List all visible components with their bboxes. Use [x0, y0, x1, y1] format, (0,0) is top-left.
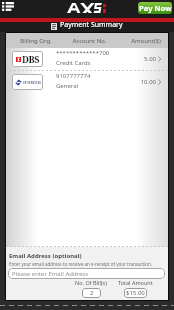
- staticText: Email Address (optional): [9, 252, 82, 260]
- staticText: SP SERVICES: [23, 81, 41, 85]
- staticText: DBS: [22, 53, 40, 65]
- staticText: Account No.: [72, 37, 107, 45]
- staticText: Pay Now: [139, 3, 172, 13]
- staticText: $15.00: [126, 289, 145, 297]
- staticText: 5.00: [144, 55, 156, 63]
- button[interactable]: Pay Now: [138, 2, 172, 14]
- button[interactable]: Please enter Email Address: [8, 268, 165, 279]
- staticText: Credit Cards: [56, 59, 91, 67]
- staticText: Amount($): [131, 37, 161, 45]
- staticText: 2: [90, 289, 94, 297]
- staticText: *************700: [56, 49, 110, 57]
- staticText: Please enter Email Address: [12, 270, 89, 278]
- staticText: Billing Org.: [20, 37, 52, 45]
- staticText: No. Of Bill(s): [75, 279, 107, 286]
- button[interactable]: SP SERVICES: [6, 71, 168, 93]
- staticText: Total Amount: [118, 279, 153, 286]
- staticText: Enter your email address to receive an e…: [9, 261, 153, 267]
- button[interactable]: DBS: [6, 48, 168, 70]
- staticText: 10.00: [140, 78, 156, 86]
- staticText: 9107777774: [56, 72, 91, 80]
- staticText: General: [56, 82, 79, 90]
- button[interactable]: Menu: [2, 2, 14, 12]
- staticText: Payment Summary: [60, 20, 123, 30]
